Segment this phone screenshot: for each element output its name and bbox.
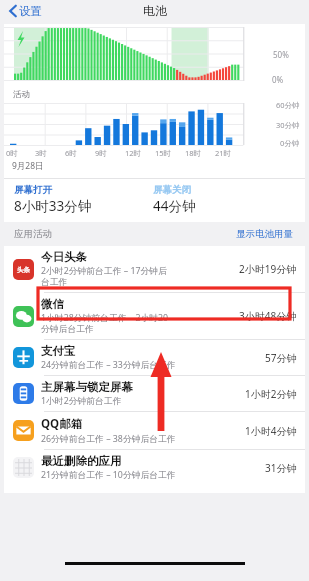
staticText: 0分钟 [280, 138, 300, 148]
button[interactable]: 微信 [4, 293, 305, 339]
staticText: 屏幕关闭 [153, 184, 191, 196]
staticText: 31分钟 [265, 461, 297, 475]
staticText: 57分钟 [265, 351, 297, 365]
staticText: 3小时48分钟 [239, 309, 297, 323]
staticText: 2小时19分钟 [239, 262, 297, 276]
button[interactable]: 最近删除的应用 [4, 450, 305, 485]
staticText: 应用活动 [14, 228, 52, 240]
staticText: 44分钟 [153, 197, 196, 215]
staticText: 0% [272, 74, 284, 85]
staticText: 1小时4分钟 [245, 424, 297, 438]
staticText: 电池 [143, 3, 167, 18]
staticText: 3时 [35, 148, 47, 158]
staticText: 18时 [185, 148, 202, 158]
other: 最近删除的应用 [13, 457, 34, 478]
staticText: 台工作 [41, 277, 68, 288]
staticText: 微信 [41, 297, 64, 311]
staticText: 30分钟 [276, 120, 300, 130]
staticText: 设置 [19, 4, 42, 18]
staticText: 9月28日 [12, 160, 44, 172]
staticText: 支付宝 [41, 344, 76, 358]
staticText: 1小时28分钟前台工作 – 2小时20 [41, 312, 169, 324]
staticText: 0时 [6, 148, 18, 158]
staticText: 屏幕打开 [14, 184, 52, 196]
staticText: 2小时2分钟前台工作 – 17分钟后 [41, 265, 167, 277]
staticText: 21分钟前台工作 – 10分钟后台工作 [41, 469, 176, 481]
staticText: 1小时2分钟 [245, 387, 297, 401]
staticText: 60分钟 [276, 100, 300, 110]
staticText: 15时 [155, 148, 172, 158]
staticText: 6时 [65, 148, 77, 158]
other: QQ邮箱 [13, 420, 34, 441]
other: 微信 [13, 306, 34, 327]
staticText: 分钟后台工作 [41, 324, 94, 335]
staticText: 26分钟前台工作 – 38分钟后台工作 [41, 433, 176, 445]
staticText: 1小时2分钟前台工作 [41, 395, 122, 407]
staticText: 50% [273, 49, 289, 60]
button[interactable]: 设置 [7, 2, 44, 20]
staticText: 活动 [13, 89, 30, 100]
staticText: 今日头条 [41, 250, 87, 264]
staticText: 最近删除的应用 [41, 454, 122, 468]
other: 主屏幕与锁定屏幕 [13, 383, 34, 404]
staticText: 21时 [215, 148, 232, 158]
button[interactable]: 主屏幕与锁定屏幕 [4, 376, 305, 411]
staticText: 8小时33分钟 [14, 197, 92, 215]
staticText: 12时 [125, 148, 142, 158]
staticText: 显示电池用量 [236, 228, 293, 240]
staticText: 24分钟前台工作 – 33分钟后台工作 [41, 359, 176, 371]
staticText: 9时 [95, 148, 107, 158]
staticText: 头条 [17, 266, 30, 274]
other: 支付宝 [13, 347, 34, 368]
button[interactable]: 显示电池用量 [234, 226, 295, 242]
button[interactable]: 支付宝 [4, 340, 305, 375]
button[interactable]: 今日头条 [4, 246, 305, 292]
staticText: QQ邮箱 [41, 416, 83, 432]
other: 今日头条 [13, 259, 34, 280]
staticText: 主屏幕与锁定屏幕 [41, 380, 133, 394]
button[interactable]: QQ邮箱 [4, 412, 305, 449]
